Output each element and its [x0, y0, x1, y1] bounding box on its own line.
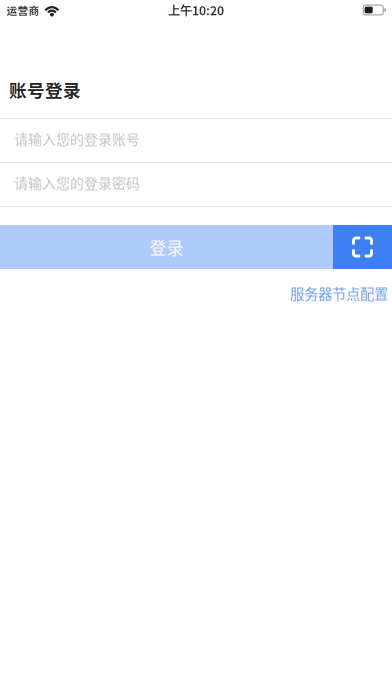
staticText: 请输入您的登录账号: [14, 128, 140, 148]
button[interactable]: 登录: [0, 225, 333, 269]
button[interactable]: 请输入您的登录密码: [0, 163, 392, 206]
staticText: 上午10:20: [168, 1, 224, 19]
staticText: 服务器节点配置: [290, 283, 388, 304]
button[interactable]: 服务器节点配置: [290, 283, 388, 304]
staticText: 运营商: [6, 2, 39, 18]
button[interactable]: 扫码登录: [333, 225, 392, 269]
staticText: 登录: [149, 235, 183, 259]
button[interactable]: 请输入您的登录账号: [0, 119, 392, 162]
staticText: 请输入您的登录密码: [14, 172, 140, 192]
staticText: 账号登录: [9, 76, 81, 102]
